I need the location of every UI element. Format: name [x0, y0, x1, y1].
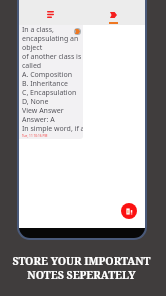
staticText: Answer: A [22, 115, 83, 124]
button[interactable]: In a class, [19, 25, 83, 139]
staticText: In a class, [22, 25, 83, 34]
staticText: Tue, 11 10:16 PM [22, 134, 83, 138]
staticText: View Answer [22, 106, 83, 115]
staticText: STORE YOUR IMPORTANT [12, 254, 151, 268]
button[interactable]: All notes [19, 0, 82, 25]
staticText: C, Encapsulation [22, 88, 83, 97]
staticText: NOTES SEPERATELY [27, 268, 136, 282]
staticText: B. Inheritance [22, 79, 83, 88]
staticText: of another class is [22, 52, 83, 61]
staticText: A. Composition [22, 70, 83, 79]
staticText: object [22, 43, 83, 52]
staticText: called [22, 61, 83, 70]
staticText: encapsulating an [22, 34, 83, 43]
staticText: In simple word, if a ... [22, 124, 83, 133]
staticText: D, None [22, 97, 83, 106]
button[interactable]: New note [121, 203, 137, 219]
button[interactable]: Labels [82, 0, 145, 25]
